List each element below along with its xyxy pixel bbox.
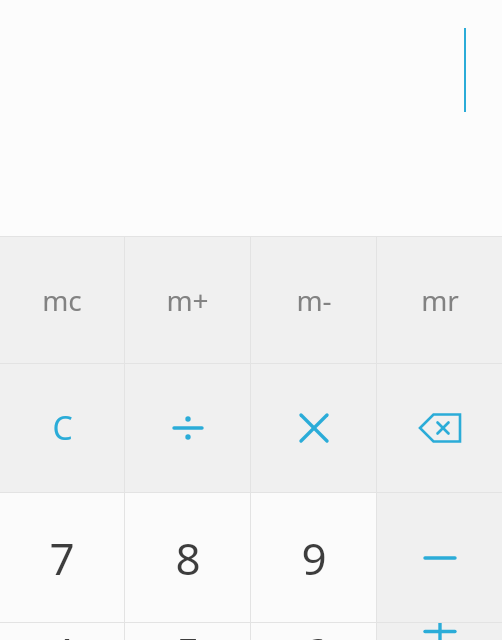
button[interactable]: 9 — [251, 493, 376, 622]
staticText: 5 — [175, 623, 201, 640]
staticText: mc — [42, 281, 82, 319]
button[interactable]: 4 — [0, 623, 124, 640]
button[interactable]: Divide — [125, 364, 250, 492]
button[interactable]: m- — [251, 237, 376, 363]
staticText: 6 — [301, 623, 327, 640]
button[interactable]: m+ — [125, 237, 250, 363]
button[interactable]: mr — [377, 237, 502, 363]
button[interactable]: mc — [0, 237, 124, 363]
staticText: mr — [421, 281, 459, 319]
button[interactable]: Multiply — [251, 364, 376, 492]
button[interactable]: 7 — [0, 493, 124, 622]
staticText: 9 — [301, 528, 327, 588]
staticText: 4 — [49, 623, 75, 640]
button[interactable]: 8 — [125, 493, 250, 622]
button[interactable]: Backspace — [377, 364, 502, 492]
staticText: m- — [296, 281, 332, 319]
button[interactable]: 6 — [251, 623, 376, 640]
staticText: 7 — [49, 528, 75, 588]
button[interactable]: C — [0, 364, 124, 492]
staticText: C — [52, 406, 73, 450]
button[interactable]: Plus — [377, 623, 502, 640]
button[interactable]: 5 — [125, 623, 250, 640]
staticText: m+ — [166, 281, 209, 319]
staticText: 8 — [175, 528, 201, 588]
button[interactable]: Minus — [377, 493, 502, 622]
